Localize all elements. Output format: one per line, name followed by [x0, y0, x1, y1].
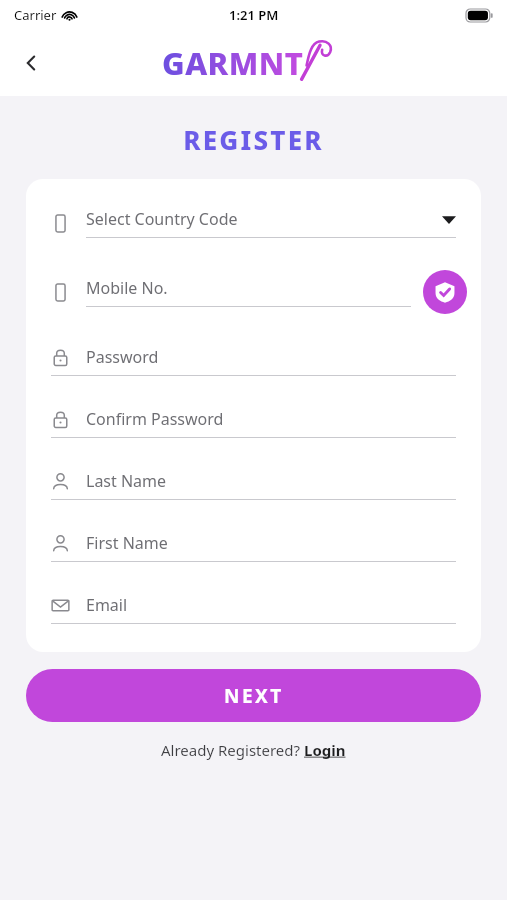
button[interactable]: Password [51, 346, 456, 376]
staticText: Last Name [86, 470, 167, 492]
staticText: 1:21 PM [229, 6, 279, 24]
staticText: NEXT [224, 683, 284, 709]
button[interactable]: Email [51, 594, 456, 624]
staticText: Confirm Password [86, 408, 224, 430]
button[interactable]: NEXT [26, 669, 481, 722]
staticText: Login [304, 740, 346, 760]
staticText: First Name [86, 532, 168, 554]
staticText: Carrier [14, 6, 57, 24]
staticText: Select Country Code [86, 208, 238, 230]
button[interactable]: Verify mobile number [423, 270, 467, 314]
button[interactable]: Back [10, 42, 52, 84]
staticText: Mobile No. [86, 277, 168, 299]
staticText: REGISTER [0, 122, 507, 157]
button[interactable]: Login [304, 740, 346, 760]
staticText: Password [86, 346, 159, 368]
button[interactable]: Confirm Password [51, 408, 456, 438]
button[interactable]: Last Name [51, 470, 456, 500]
staticText: Already Registered? [161, 740, 304, 760]
button[interactable]: Select Country Code [51, 208, 456, 238]
staticText: Email [86, 594, 128, 616]
button[interactable]: Mobile No. [51, 277, 411, 307]
staticText: GARMNT [162, 42, 304, 84]
button[interactable]: First Name [51, 532, 456, 562]
